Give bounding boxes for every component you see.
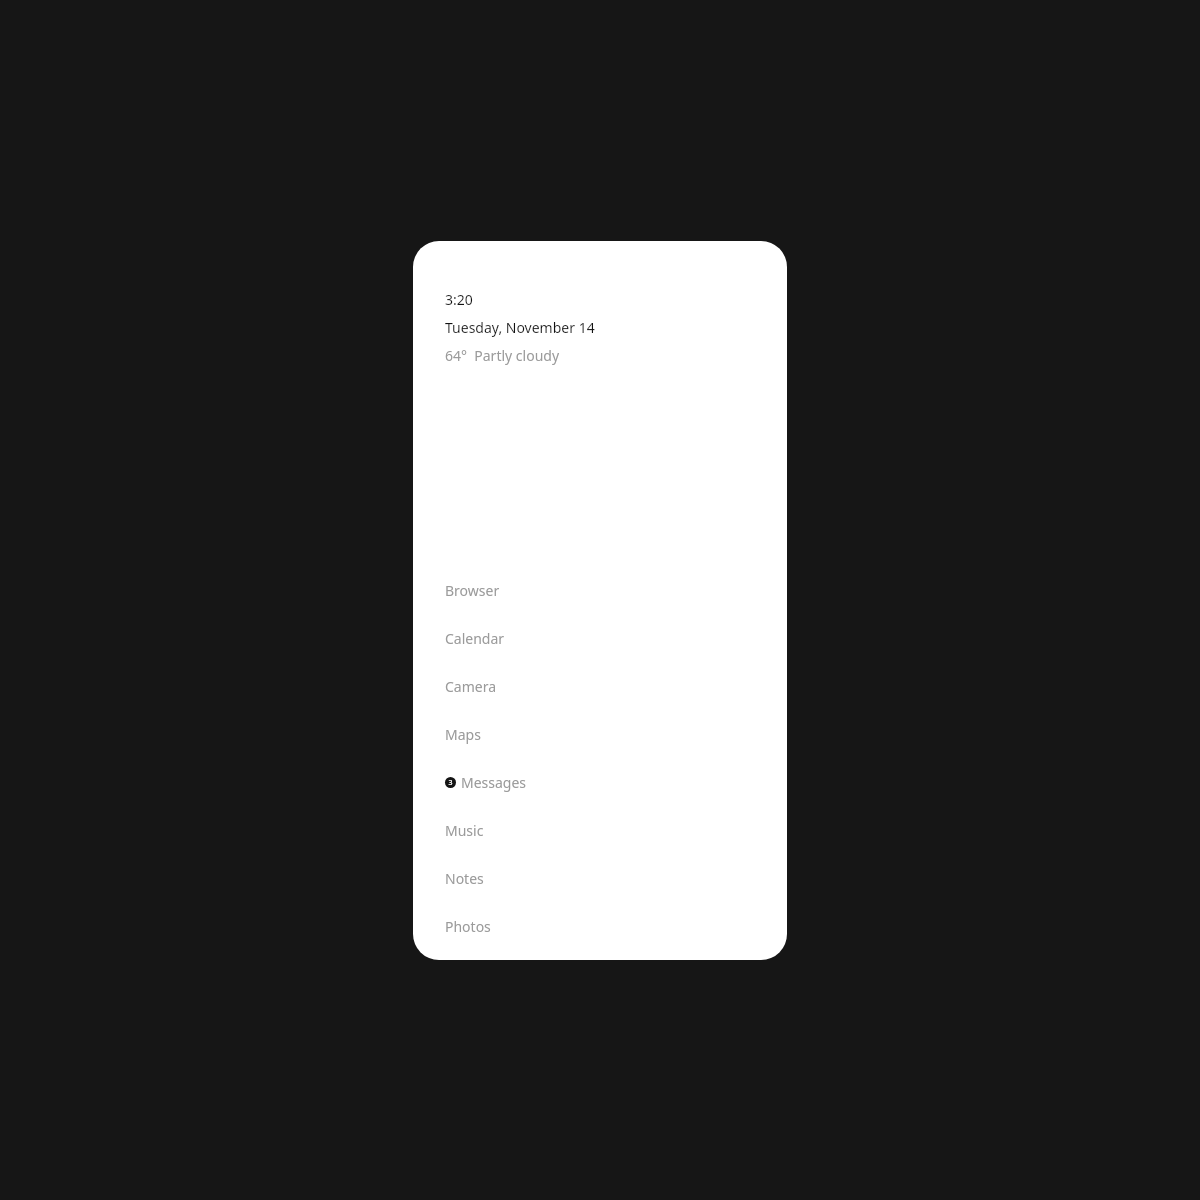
- button[interactable]: Maps: [413, 710, 787, 758]
- button[interactable]: Browser: [413, 566, 787, 614]
- button[interactable]: Music: [413, 806, 787, 854]
- staticText: Calendar: [445, 629, 505, 648]
- staticText: Camera: [445, 677, 497, 696]
- button[interactable]: Calendar: [413, 614, 787, 662]
- staticText: 3: [448, 778, 453, 788]
- staticText: 64° Partly cloudy: [445, 346, 560, 365]
- staticText: Music: [445, 821, 484, 840]
- staticText: Maps: [445, 725, 481, 744]
- button[interactable]: Notes: [413, 854, 787, 902]
- button[interactable]: Photos: [413, 902, 787, 950]
- staticText: Messages: [461, 773, 527, 792]
- staticText: 3:20: [445, 290, 473, 309]
- staticText: Photos: [445, 917, 491, 936]
- staticText: Notes: [445, 869, 484, 888]
- button[interactable]: Camera: [413, 662, 787, 710]
- staticText: Browser: [445, 581, 500, 600]
- staticText: Tuesday, November 14: [445, 318, 595, 337]
- button[interactable]: 3: [413, 758, 787, 806]
